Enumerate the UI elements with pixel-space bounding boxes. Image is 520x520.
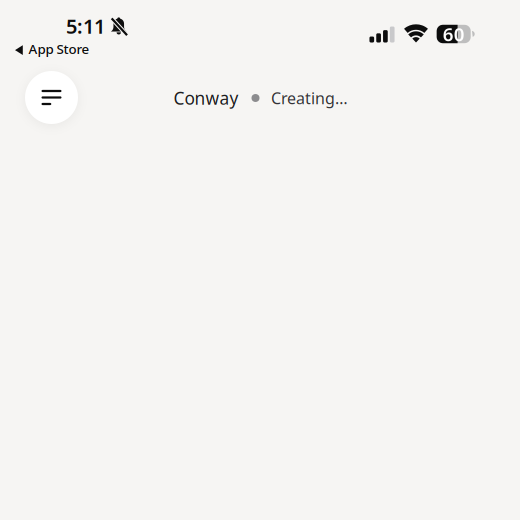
button[interactable]: App Store xyxy=(15,41,115,57)
staticText: Conway xyxy=(173,86,238,109)
button[interactable]: Menu xyxy=(25,71,78,124)
staticText: 5:11 xyxy=(66,13,105,39)
staticText: Creating… xyxy=(271,87,348,109)
staticText: App Store xyxy=(28,40,89,58)
staticText: 60 xyxy=(443,22,465,46)
